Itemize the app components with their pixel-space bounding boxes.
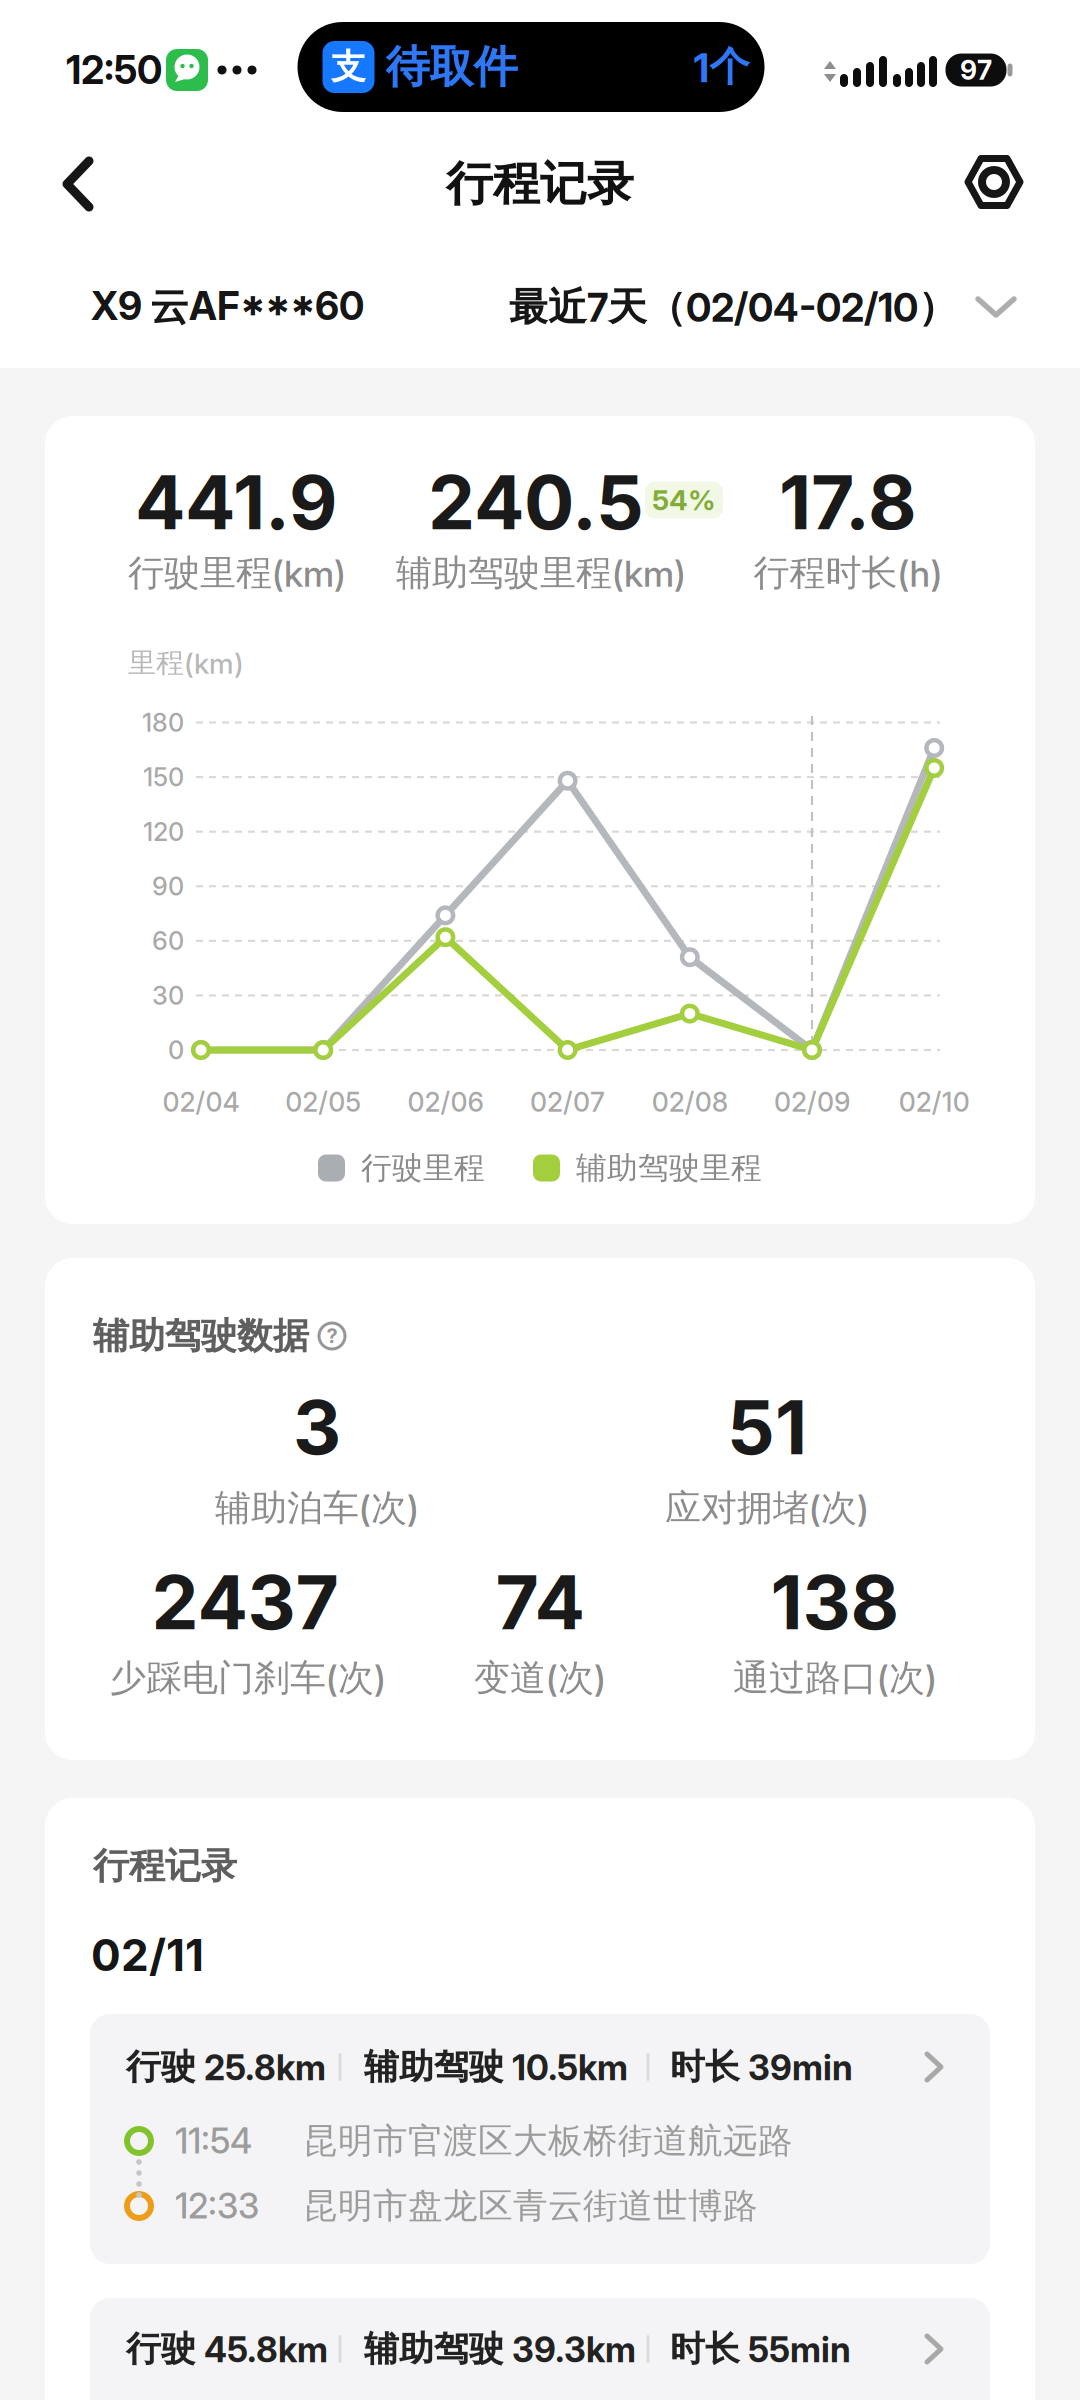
- staticText: 180: [142, 708, 184, 737]
- staticText: 02/10: [899, 1086, 970, 1118]
- button[interactable]: 行程 11:54 昆明市官渡区大板桥街道航远路: [90, 2014, 990, 2264]
- staticText: 时长 55min: [670, 2328, 851, 2370]
- staticText: 02/07: [530, 1086, 605, 1118]
- staticText: 12:50: [66, 47, 162, 93]
- staticText: 11:54: [175, 2121, 252, 2161]
- staticText: ?: [326, 1324, 337, 1348]
- staticText: 行程时长(h): [753, 551, 942, 595]
- staticText: 138: [770, 1558, 899, 1646]
- staticText: 60: [152, 926, 184, 956]
- staticText: X9 云AF***60: [91, 283, 364, 331]
- staticText: 51: [727, 1383, 807, 1471]
- button[interactable]: 选择日期范围: [501, 275, 1025, 339]
- button[interactable]: Back: [43, 139, 113, 229]
- staticText: 应对拥堵(次): [665, 1486, 869, 1530]
- staticText: 74: [495, 1558, 584, 1646]
- button[interactable]: 选择车辆: [81, 273, 374, 341]
- staticText: 行驶 25.8km: [126, 2046, 326, 2088]
- staticText: 02/04: [162, 1086, 239, 1118]
- staticText: 54%: [652, 483, 716, 516]
- staticText: 昆明市盘龙区青云街道世博路: [303, 2185, 758, 2227]
- staticText: 变道(次): [474, 1656, 606, 1700]
- staticText: 昆明市官渡区大板桥街道航远路: [303, 2120, 793, 2162]
- staticText: 2437: [151, 1558, 338, 1646]
- staticText: 辅助驾驶里程: [576, 1149, 762, 1187]
- staticText: 行程记录: [93, 1844, 237, 1888]
- staticText: 02/06: [407, 1086, 483, 1118]
- staticText: 行驶里程: [361, 1149, 485, 1187]
- button[interactable]: 行程 45.8km: [90, 2298, 990, 2400]
- staticText: 支: [331, 46, 366, 88]
- staticText: 02/11: [91, 1929, 204, 1981]
- staticText: 1个: [693, 42, 749, 91]
- staticText: 辅助驾驶数据: [93, 1314, 309, 1358]
- staticText: 最近7天（02/04-02/10）: [509, 283, 957, 331]
- button[interactable]: 支付宝 待取件 1个: [297, 22, 764, 112]
- staticText: 辅助驾驶里程(km): [396, 551, 686, 595]
- staticText: 待取件: [385, 40, 517, 94]
- button[interactable]: Settings: [950, 143, 1038, 220]
- staticText: 行驶 45.8km: [126, 2328, 328, 2370]
- staticText: 12:33: [175, 2186, 259, 2226]
- staticText: 3: [293, 1383, 341, 1471]
- staticText: 通过路口(次): [733, 1656, 937, 1700]
- staticText: 90: [152, 871, 184, 901]
- staticText: 少踩电门刹车(次): [110, 1656, 386, 1700]
- staticText: 02/05: [285, 1086, 361, 1118]
- button[interactable]: 说明: [309, 1313, 355, 1359]
- staticText: 120: [143, 817, 184, 847]
- staticText: 150: [143, 762, 184, 792]
- staticText: 17.8: [779, 458, 917, 546]
- staticText: 时长 39min: [670, 2046, 853, 2088]
- staticText: 97: [960, 54, 992, 86]
- staticText: 30: [152, 980, 184, 1010]
- staticText: 02/09: [774, 1086, 850, 1118]
- staticText: 辅助泊车(次): [215, 1486, 419, 1530]
- staticText: 里程(km): [128, 646, 244, 680]
- staticText: 0: [168, 1035, 184, 1065]
- staticText: 02/08: [652, 1086, 728, 1118]
- staticText: 240.5: [428, 458, 644, 546]
- staticText: 441.9: [135, 458, 337, 546]
- staticText: 行程记录: [446, 155, 634, 213]
- staticText: 辅助驾驶 39.3km: [364, 2328, 636, 2370]
- staticText: 辅助驾驶 10.5km: [364, 2046, 628, 2088]
- staticText: 行驶里程(km): [128, 551, 346, 595]
